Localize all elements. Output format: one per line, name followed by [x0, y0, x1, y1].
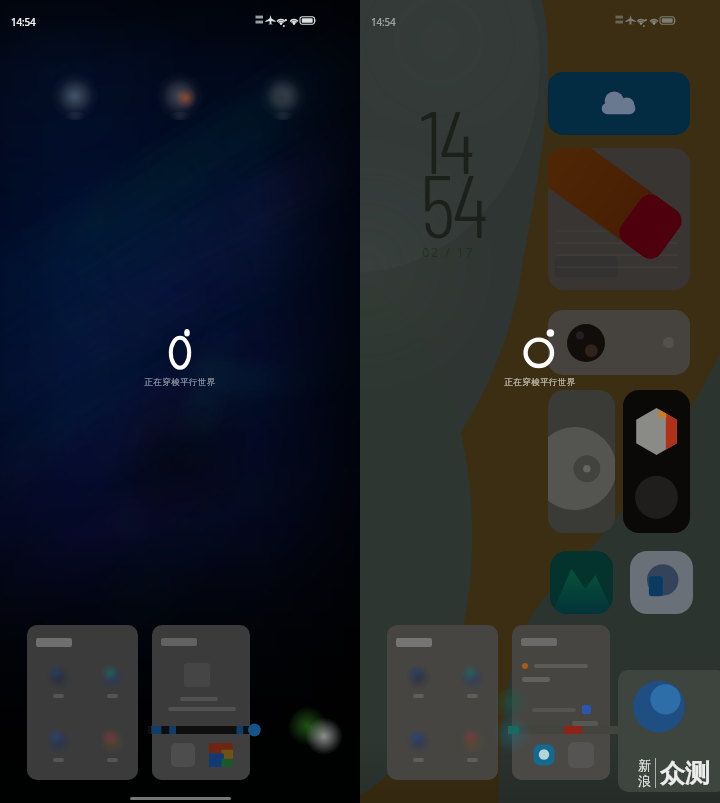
staticText: 浪: [638, 773, 651, 789]
staticText: 02 / 17: [422, 243, 475, 261]
staticText: 54: [420, 150, 486, 256]
button[interactable]: Recent app folder: [27, 625, 138, 780]
staticText: 14: [420, 86, 472, 192]
button[interactable]: App icon: [258, 73, 308, 123]
button[interactable]: Recent app note: [512, 625, 610, 780]
staticText: 14:54: [371, 15, 396, 29]
staticText: 正在穿梭平行世界: [144, 377, 216, 388]
button[interactable]: App icon: [155, 73, 205, 123]
staticText: 新: [638, 757, 651, 773]
button[interactable]: Recent app note: [152, 625, 250, 780]
button[interactable]: Health: [623, 390, 690, 533]
staticText: 众测: [660, 758, 710, 789]
button[interactable]: Recent app browser: [618, 670, 720, 792]
button[interactable]: Shopping: [548, 148, 690, 290]
button[interactable]: App icon: [50, 73, 100, 123]
staticText: 14:54: [11, 15, 36, 29]
button[interactable]: Camera: [548, 310, 690, 375]
button[interactable]: Files: [630, 551, 693, 614]
button[interactable]: Recent app folder: [387, 625, 498, 780]
button[interactable]: Weather: [548, 72, 690, 135]
button[interactable]: Gallery: [550, 551, 613, 614]
staticText: 正在穿梭平行世界: [504, 377, 576, 388]
button[interactable]: Music: [548, 390, 615, 533]
